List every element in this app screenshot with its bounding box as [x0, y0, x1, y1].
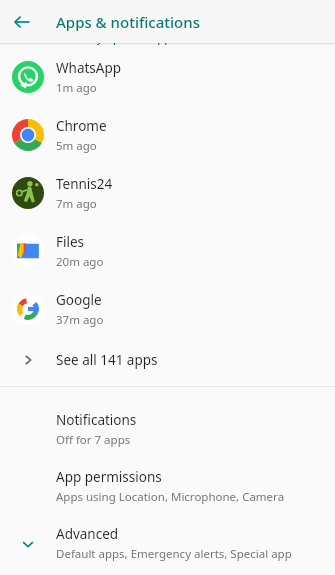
button[interactable]: Files	[0, 222, 335, 280]
staticText: See all 141 apps	[56, 351, 158, 369]
button[interactable]: Tennis24	[0, 164, 335, 222]
staticText: Chrome	[56, 117, 107, 135]
button[interactable]: App permissions	[0, 458, 335, 515]
staticText: Apps using Location, Microphone, Camera	[56, 489, 285, 505]
staticText: WhatsApp	[56, 59, 122, 77]
staticText: Notifications	[56, 411, 137, 429]
button[interactable]: See all 141 apps	[0, 338, 335, 381]
staticText: Advanced	[56, 525, 119, 543]
button[interactable]: Google	[0, 280, 335, 338]
button[interactable]: Chrome	[0, 106, 335, 164]
button[interactable]: WhatsApp	[0, 48, 335, 106]
staticText: 20m ago	[56, 254, 104, 270]
button[interactable]: Notifications	[0, 401, 335, 458]
button[interactable]: Back	[0, 0, 43, 43]
staticText: 7m ago	[56, 196, 97, 212]
staticText: App permissions	[56, 468, 162, 486]
staticText: Default apps, Emergency alerts, Special …	[56, 546, 325, 562]
staticText: Off for 7 apps	[56, 432, 131, 448]
staticText: 37m ago	[56, 312, 104, 328]
staticText: Google	[56, 291, 102, 309]
staticText: Apps & notifications	[56, 12, 200, 32]
button[interactable]: Advanced	[0, 515, 335, 572]
staticText: Files	[56, 233, 85, 251]
staticText: Recently opened apps	[56, 30, 178, 46]
staticText: Tennis24	[56, 175, 113, 193]
staticText: 5m ago	[56, 138, 97, 154]
staticText: 1m ago	[56, 80, 97, 96]
